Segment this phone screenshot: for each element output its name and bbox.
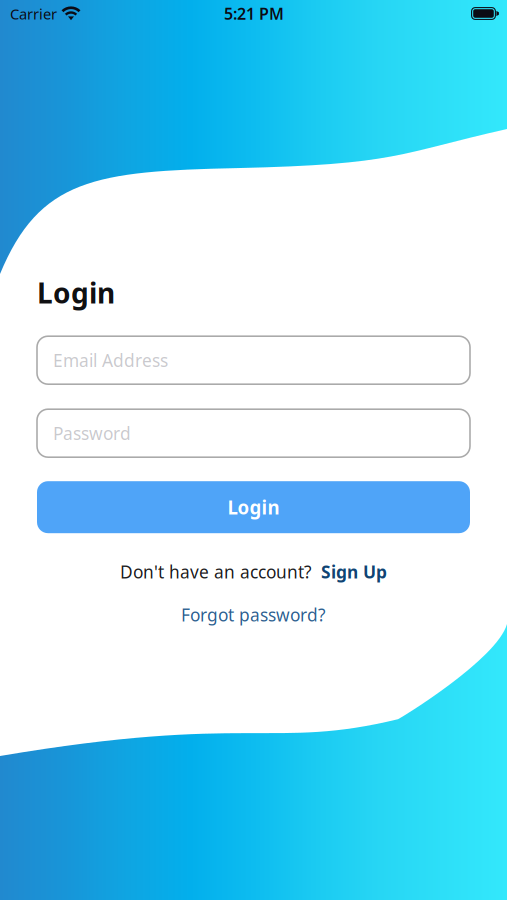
button[interactable]: Sign Up (321, 560, 387, 583)
staticText: 5:21 PM (224, 3, 284, 24)
staticText: Sign Up (321, 560, 387, 583)
button[interactable]: Forgot password? (181, 603, 326, 626)
staticText: Email Address (53, 349, 168, 372)
staticText: Carrier (10, 4, 57, 23)
staticText: Don't have an account? (120, 560, 312, 583)
staticText: Password (53, 422, 131, 445)
staticText: Forgot password? (181, 603, 326, 626)
staticText: Login (227, 495, 279, 520)
staticText: Login (37, 274, 115, 311)
button[interactable]: Login (37, 481, 470, 533)
